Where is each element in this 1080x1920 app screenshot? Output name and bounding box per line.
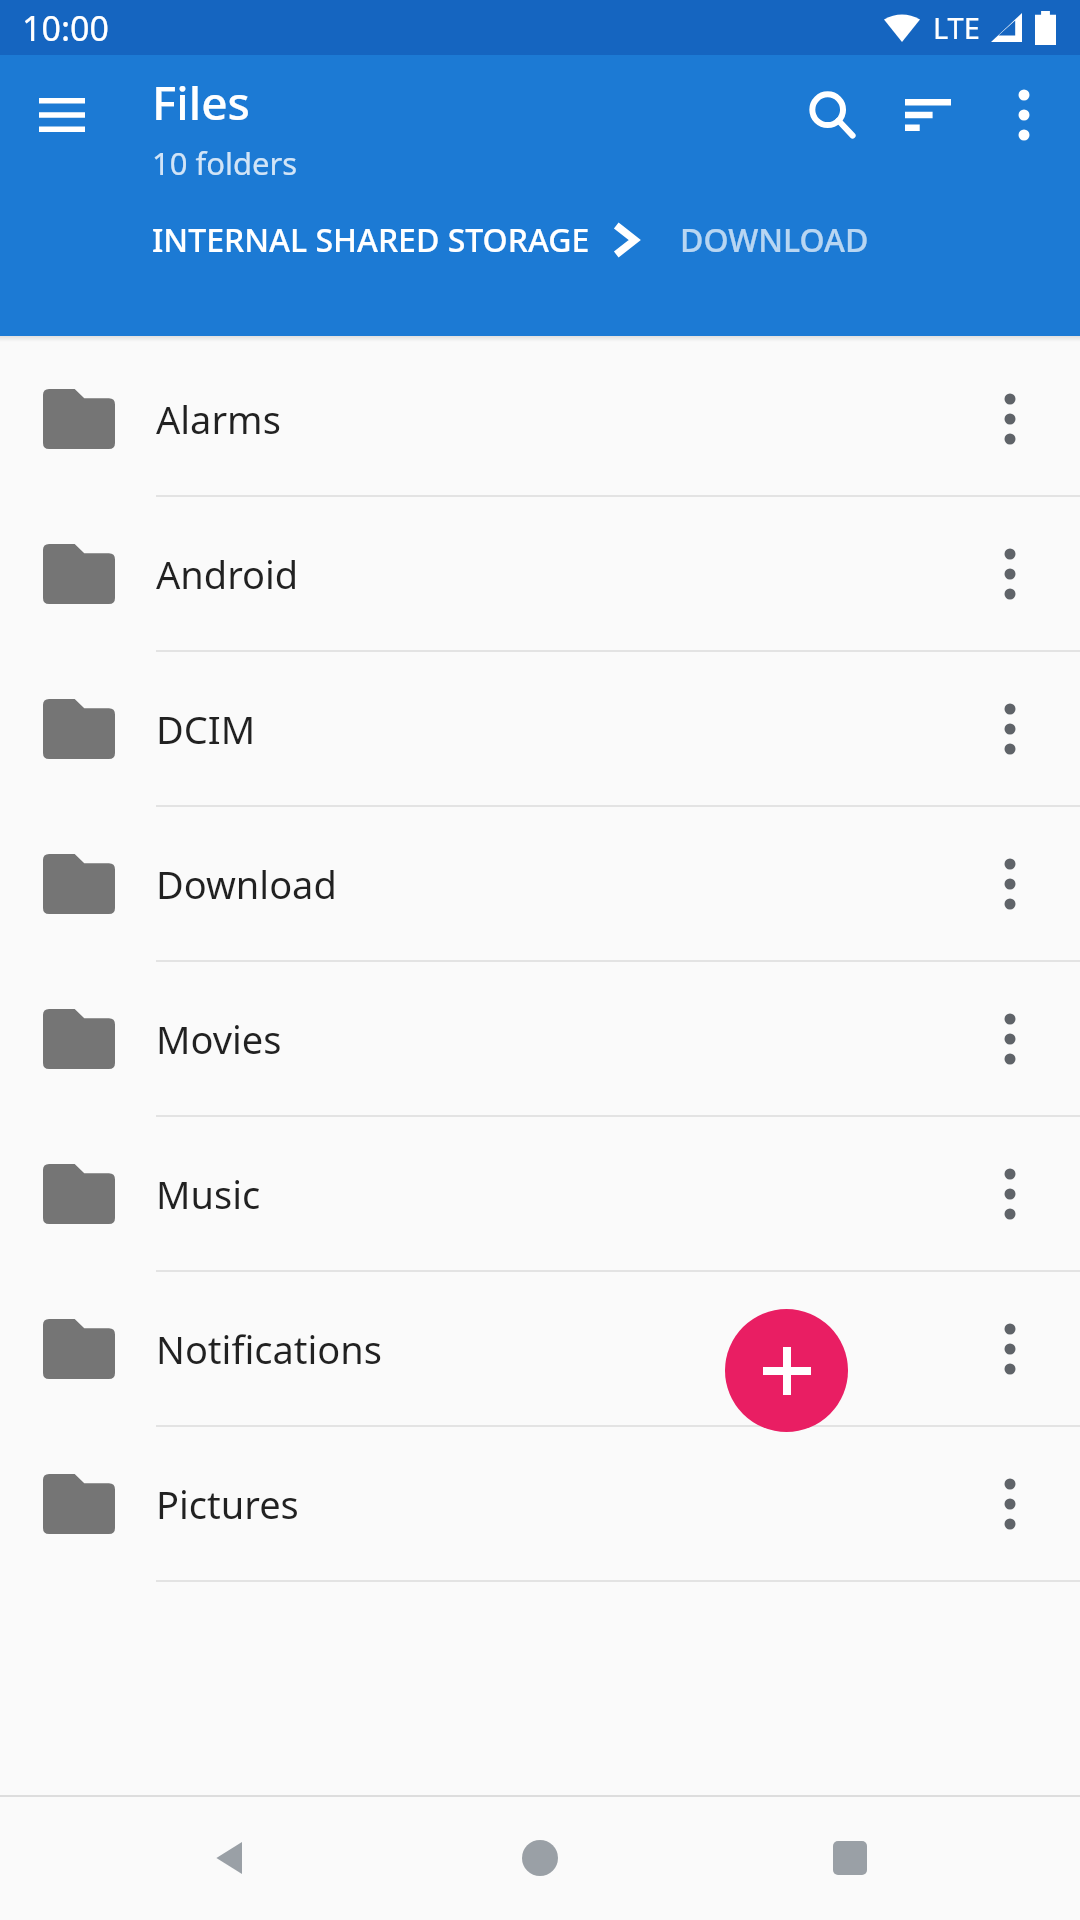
button[interactable]: Recent apps — [770, 1795, 930, 1920]
button[interactable]: Home — [460, 1795, 620, 1920]
staticText: Download — [156, 858, 960, 910]
button[interactable]: Download — [0, 807, 1080, 960]
button[interactable]: More options for Download — [960, 807, 1060, 960]
button[interactable]: More options for DCIM — [960, 652, 1060, 805]
button[interactable]: Search — [784, 67, 880, 163]
button[interactable]: INTERNAL SHARED STORAGE — [152, 218, 590, 262]
staticText: Pictures — [156, 1478, 960, 1530]
button[interactable]: DOWNLOAD — [680, 218, 869, 262]
staticText: Files — [152, 71, 250, 134]
button[interactable]: Pictures — [0, 1427, 1080, 1580]
staticText: DCIM — [156, 703, 960, 755]
staticText: LTE — [933, 8, 980, 47]
button[interactable]: Music — [0, 1117, 1080, 1270]
staticText: 10:00 — [22, 5, 109, 51]
button[interactable]: Open navigation drawer — [14, 67, 110, 163]
staticText: Movies — [156, 1013, 960, 1065]
staticText: Music — [156, 1168, 960, 1220]
button[interactable]: Android — [0, 497, 1080, 650]
button[interactable]: More options for Alarms — [960, 342, 1060, 495]
staticText: Alarms — [156, 393, 960, 445]
button[interactable]: DCIM — [0, 652, 1080, 805]
button[interactable]: More options — [976, 67, 1072, 163]
staticText: INTERNAL SHARED STORAGE — [152, 218, 590, 262]
button[interactable]: Alarms — [0, 342, 1080, 495]
staticText: 10 folders — [152, 142, 298, 184]
staticText: Notifications — [156, 1323, 960, 1375]
button[interactable]: Sort — [880, 67, 976, 163]
button[interactable]: More options for Pictures — [960, 1427, 1060, 1580]
button[interactable]: More options for Android — [960, 497, 1060, 650]
button[interactable]: More options for Notifications — [960, 1272, 1060, 1425]
button[interactable]: Notifications — [0, 1272, 1080, 1425]
button[interactable]: Movies — [0, 962, 1080, 1115]
button[interactable]: Back — [150, 1795, 310, 1920]
staticText: DOWNLOAD — [680, 218, 869, 262]
button[interactable]: Create new folder — [725, 1309, 848, 1432]
button[interactable]: More options for Movies — [960, 962, 1060, 1115]
staticText: Android — [156, 548, 960, 600]
button[interactable]: More options for Music — [960, 1117, 1060, 1270]
